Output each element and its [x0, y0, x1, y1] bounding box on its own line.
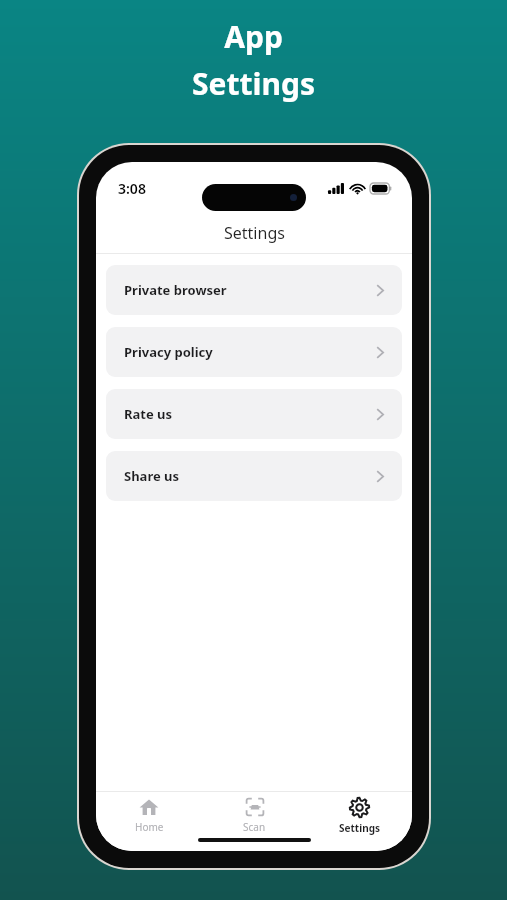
button[interactable]: Scan	[202, 792, 307, 834]
staticText: Settings	[192, 63, 315, 104]
staticText: App	[224, 16, 283, 57]
staticText: Privacy policy	[124, 343, 376, 361]
button[interactable]: Share us	[106, 451, 402, 501]
other: Home	[139, 797, 159, 817]
button[interactable]: Privacy policy	[106, 327, 402, 377]
button[interactable]: Private browser	[106, 265, 402, 315]
staticText: Scan	[243, 820, 266, 834]
staticText: Private browser	[124, 281, 376, 299]
other: Scan	[245, 797, 265, 817]
staticText: Home	[135, 820, 164, 834]
staticText: 3:08	[118, 179, 146, 198]
button[interactable]: Settings	[307, 792, 412, 835]
staticText: Rate us	[124, 405, 376, 423]
button[interactable]: Home	[96, 792, 202, 834]
other: Settings	[349, 797, 370, 818]
staticText: Settings	[339, 821, 380, 835]
button[interactable]: Rate us	[106, 389, 402, 439]
staticText: Share us	[124, 467, 376, 485]
staticText: Settings	[224, 222, 285, 244]
